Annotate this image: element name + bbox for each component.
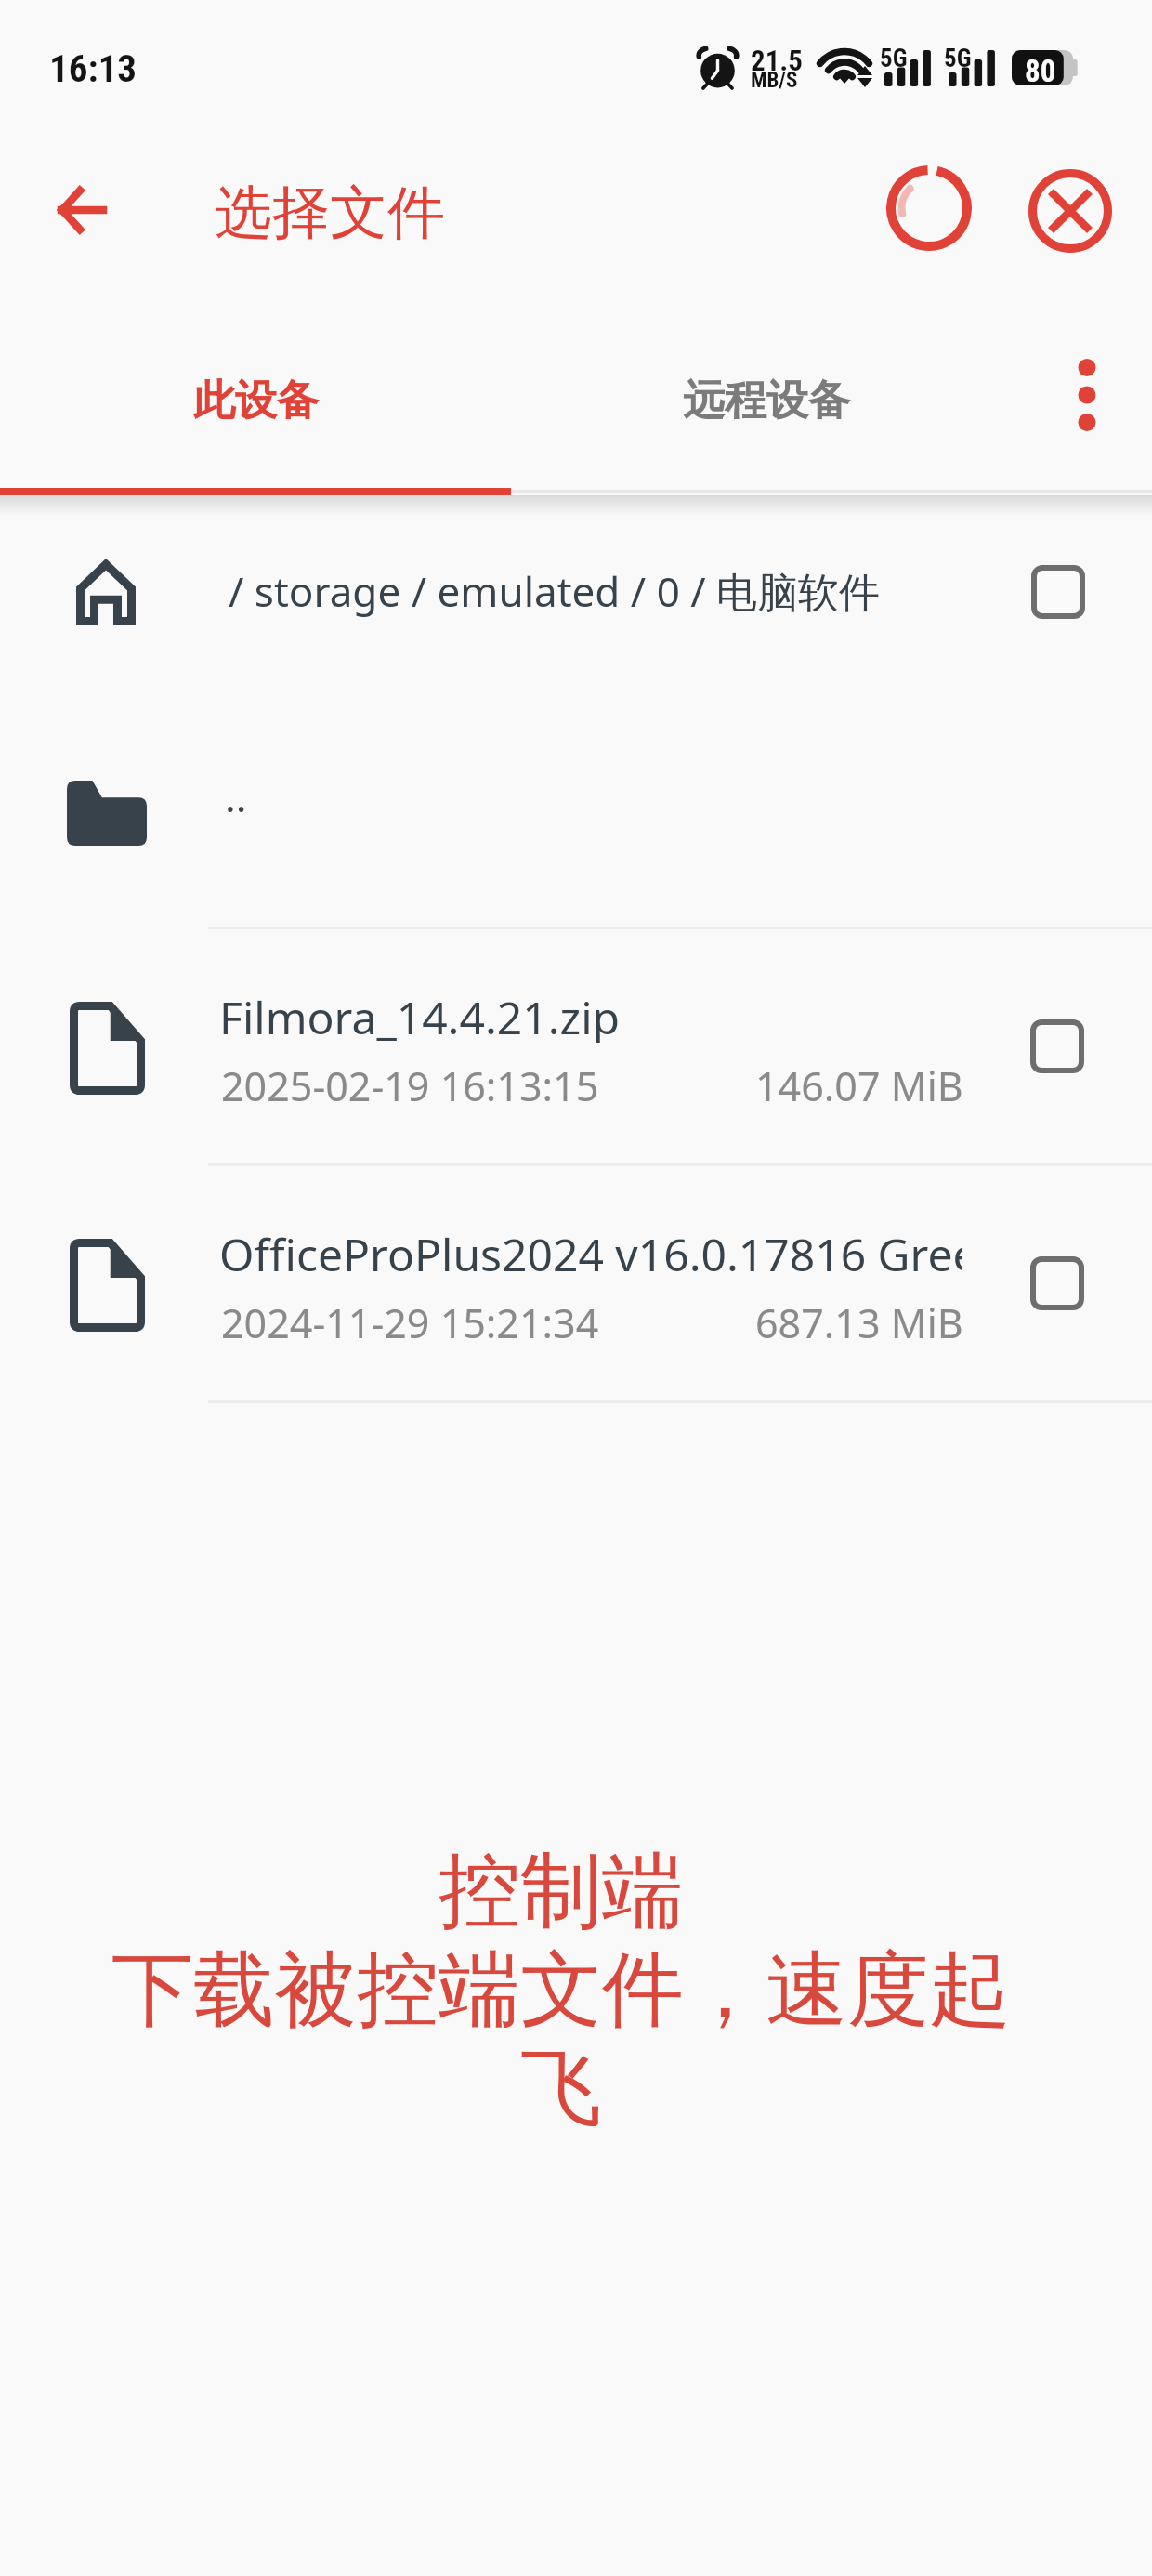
button[interactable]: .. (0, 702, 1152, 927)
staticText: 远程设备 (683, 375, 850, 427)
staticText: Filmora_14.4.21.zip (219, 987, 621, 1043)
staticText: 控制端 下载被控端文件，速度起飞 (92, 1840, 1030, 2140)
staticText: 21.5 (751, 44, 804, 77)
button[interactable]: More options (1042, 335, 1132, 455)
button[interactable]: 此设备 (0, 316, 511, 490)
staticText: 80 (1025, 53, 1056, 88)
button[interactable]: Filmora_14.4.21.zip (0, 929, 1152, 1163)
button[interactable]: Close (1020, 161, 1120, 261)
staticText: / storage / emulated / 0 / 电脑软件 (229, 563, 881, 619)
staticText: .. (225, 769, 247, 824)
button[interactable]: / storage / emulated / 0 / 电脑软件 (0, 497, 1152, 702)
button[interactable]: OfficeProPlus2024 v16.0.17816 Green (0, 1166, 1152, 1400)
button[interactable]: Select (1031, 565, 1085, 619)
button[interactable]: Loading (879, 158, 979, 258)
staticText: 选择文件 (215, 177, 445, 249)
staticText: 5G (944, 44, 972, 73)
staticText: 5G (880, 44, 908, 73)
button[interactable]: Back (36, 165, 125, 255)
button[interactable]: 远程设备 (511, 316, 1022, 490)
staticText: 146.07 MiB (755, 1058, 963, 1113)
staticText: OfficeProPlus2024 v16.0.17816 Green (219, 1224, 962, 1280)
button[interactable]: Select (1030, 1256, 1084, 1310)
staticText: 2024-11-29 15:21:34 (221, 1295, 599, 1350)
staticText: 16:13 (49, 46, 137, 91)
staticText: 687.13 MiB (755, 1295, 963, 1350)
button[interactable]: Select (1030, 1019, 1084, 1073)
staticText: 2025-02-19 16:13:15 (221, 1058, 599, 1113)
staticText: 此设备 (193, 375, 319, 427)
staticText: MB/S (751, 68, 798, 93)
